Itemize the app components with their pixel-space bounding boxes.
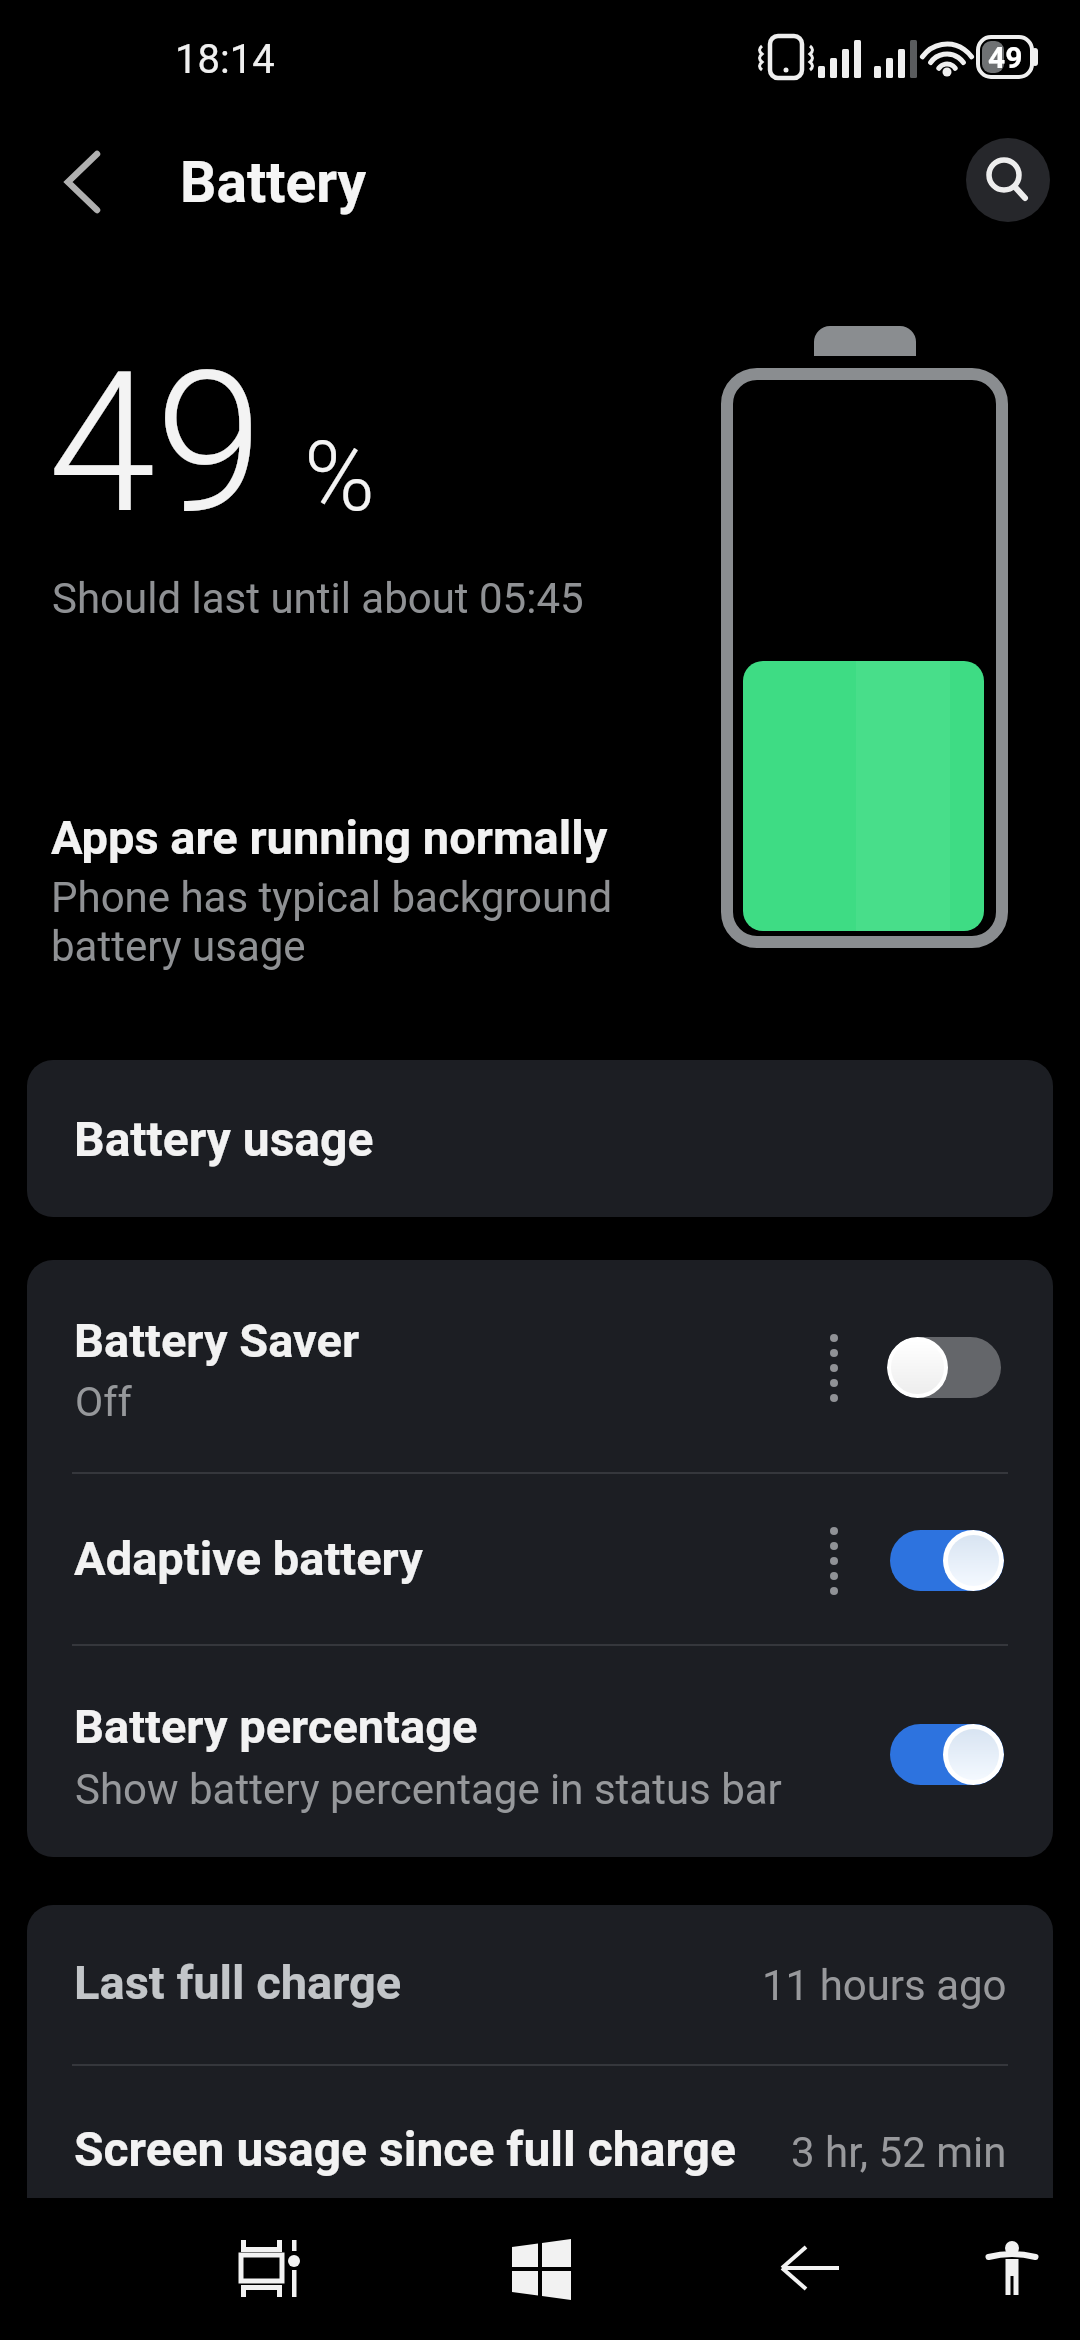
button[interactable] [966, 138, 1050, 222]
staticText: Show battery percentage in status bar [75, 1765, 782, 1813]
button[interactable] [27, 2065, 1053, 2198]
staticText: Battery usage [74, 1111, 374, 1167]
button[interactable] [27, 1645, 817, 1857]
staticText: Battery [180, 149, 367, 216]
button[interactable] [890, 1724, 1004, 1785]
staticText: Battery Saver [74, 1313, 360, 1368]
button[interactable] [493, 2221, 589, 2317]
staticText: Off [75, 1378, 132, 1424]
button[interactable] [27, 1060, 1053, 1217]
button[interactable] [762, 2220, 858, 2316]
staticText: 11 hours ago [762, 1961, 1007, 2010]
button[interactable] [40, 140, 130, 230]
staticText: Phone has typical background [51, 873, 613, 922]
staticText: 49 [988, 40, 1023, 75]
staticText: 18:14 [175, 36, 275, 80]
staticText: 3 hr, 52 min [791, 2128, 1007, 2177]
staticText: battery usage [51, 922, 306, 971]
staticText: % [304, 421, 375, 523]
button[interactable] [890, 1530, 1004, 1591]
staticText: Adaptive battery [74, 1531, 423, 1586]
button[interactable] [27, 1260, 817, 1473]
staticText: Apps are running normally [51, 810, 608, 864]
staticText: Screen usage since full charge [74, 2121, 736, 2177]
staticText: Last full charge [74, 1955, 402, 2010]
button[interactable] [220, 2220, 316, 2316]
staticText: 49 [48, 330, 264, 520]
button[interactable] [27, 1473, 817, 1645]
button[interactable] [27, 1905, 1053, 2065]
staticText: Battery percentage [74, 1699, 478, 1754]
staticText: Should last until about 05:45 [52, 574, 584, 623]
button[interactable] [887, 1337, 1001, 1398]
button[interactable] [966, 2222, 1058, 2314]
